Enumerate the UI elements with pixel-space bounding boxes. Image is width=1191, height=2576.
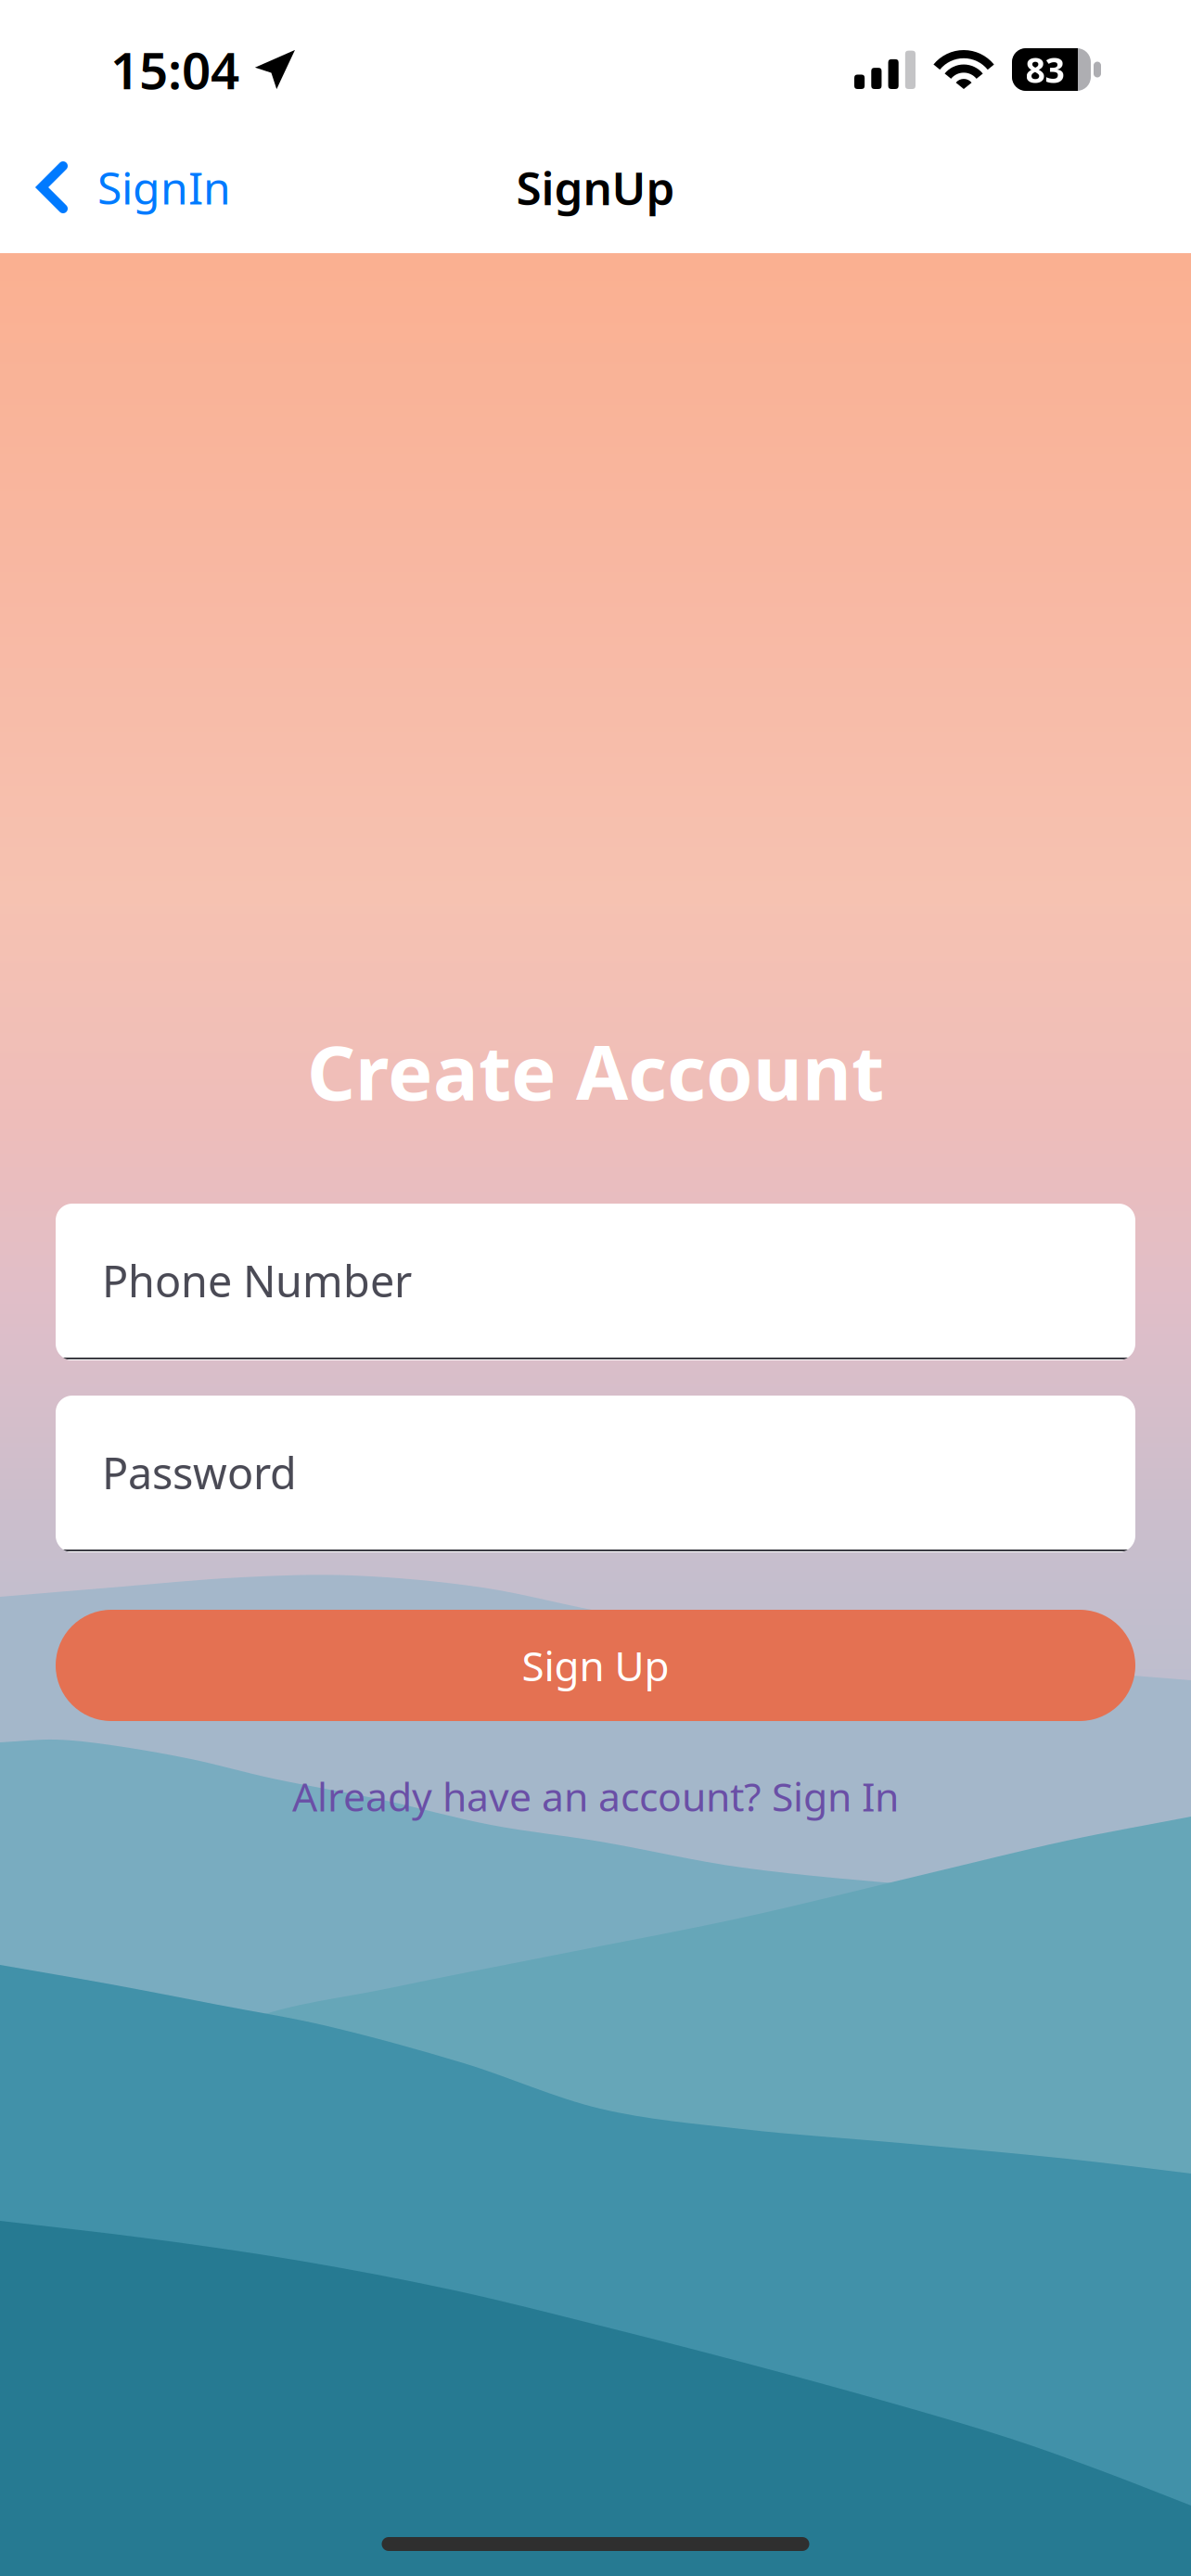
staticText: Phone Number: [102, 1252, 412, 1309]
button[interactable]: Already have an account? Sign In: [292, 1772, 899, 1820]
staticText: Sign Up: [522, 1638, 669, 1692]
button[interactable]: SignIn: [0, 137, 253, 237]
staticText: 15:04: [110, 36, 239, 103]
button[interactable]: Sign Up: [56, 1610, 1135, 1721]
staticText: Create Account: [307, 1021, 884, 1121]
staticText: Already have an account? Sign In: [292, 1770, 899, 1822]
staticText: Password: [102, 1444, 297, 1501]
staticText: 83: [1025, 47, 1064, 93]
staticText: SignIn: [97, 158, 231, 217]
staticText: SignUp: [516, 157, 675, 218]
